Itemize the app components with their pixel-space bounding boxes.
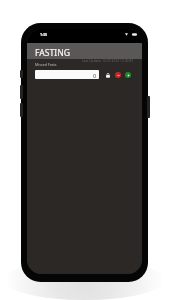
button[interactable]: Decrease [115,72,121,78]
button[interactable]: Lock [106,72,110,78]
button[interactable]: 0 [35,70,99,79]
staticText: Missed Fasts [35,62,57,67]
staticText: FASTING [35,47,70,59]
staticText: Last Update: 10.07.2023 12:30:09 [82,58,134,62]
staticText: 1:35 [40,32,48,37]
staticText: 0 [93,72,97,79]
button[interactable]: Increase [125,72,131,78]
